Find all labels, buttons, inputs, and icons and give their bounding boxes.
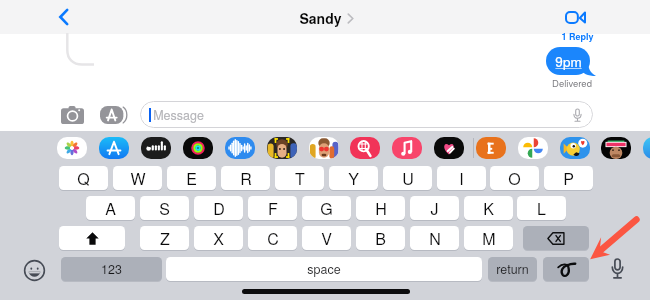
staticText: H	[375, 197, 387, 220]
button[interactable]: T	[275, 166, 324, 190]
staticText: T	[295, 167, 305, 190]
button[interactable]: Dictation	[605, 257, 629, 281]
staticText: space	[307, 260, 341, 278]
staticText: J	[430, 197, 439, 220]
button[interactable]: Camera	[57, 103, 87, 127]
button[interactable]: S	[140, 196, 189, 220]
button[interactable]: F	[248, 196, 297, 220]
staticText: E	[186, 167, 197, 190]
staticText: Z	[160, 227, 170, 250]
staticText: Q	[77, 167, 90, 190]
button[interactable]: return	[488, 257, 537, 281]
staticText: S	[159, 197, 170, 220]
button[interactable]: Contact details	[299, 8, 354, 28]
button[interactable]: App 2	[99, 137, 129, 159]
button[interactable]: 1 Reply	[555, 28, 600, 45]
button[interactable]: E	[167, 166, 216, 190]
button[interactable]: App 4	[183, 137, 213, 159]
staticText: P	[563, 167, 574, 190]
staticText: 123	[101, 260, 122, 278]
button[interactable]: J	[410, 196, 459, 220]
staticText: L	[537, 197, 546, 220]
button[interactable]: App 12	[518, 137, 548, 159]
button[interactable]: H	[356, 196, 405, 220]
staticText: D	[213, 197, 225, 220]
staticText: M	[482, 227, 496, 250]
button[interactable]: D	[194, 196, 243, 220]
staticText: N	[429, 227, 441, 250]
button[interactable]: App 9	[392, 137, 422, 159]
button[interactable]: Dictate	[568, 106, 586, 124]
button[interactable]: O	[490, 166, 539, 190]
button[interactable]: space	[166, 257, 482, 281]
staticText: Message	[153, 106, 204, 124]
button[interactable]: G	[302, 196, 351, 220]
button[interactable]: App 5	[225, 137, 255, 159]
button[interactable]: Message	[140, 101, 593, 128]
staticText: 1 Reply	[561, 30, 594, 43]
staticText: X	[213, 227, 224, 250]
staticText: F	[268, 197, 278, 220]
button[interactable]: I	[437, 166, 486, 190]
staticText: Delivered	[552, 76, 592, 90]
staticText: return	[496, 260, 529, 278]
staticText: U	[402, 167, 414, 190]
button[interactable]: X	[194, 226, 243, 250]
button[interactable]: K	[464, 196, 513, 220]
staticText: O	[508, 167, 521, 190]
button[interactable]: App 10	[434, 137, 464, 159]
button[interactable]: App 3	[141, 137, 171, 159]
staticText: W	[130, 167, 146, 190]
button[interactable]: App 13	[560, 137, 590, 159]
staticText: R	[240, 167, 252, 190]
button[interactable]: App 11	[476, 137, 506, 159]
button[interactable]: 9pm	[546, 47, 590, 75]
button[interactable]: A	[86, 196, 135, 220]
button[interactable]: C	[248, 226, 297, 250]
button[interactable]: R	[221, 166, 270, 190]
staticText: K	[483, 197, 494, 220]
button[interactable]: FaceTime video call	[557, 4, 593, 30]
button[interactable]: Backspace	[523, 226, 589, 250]
button[interactable]: M	[464, 226, 513, 250]
button[interactable]: Shift	[59, 226, 125, 250]
staticText: A	[105, 197, 116, 220]
button[interactable]: Z	[140, 226, 189, 250]
button[interactable]: App 6	[267, 137, 297, 159]
button[interactable]: App 14	[601, 137, 631, 159]
button[interactable]: Back	[49, 3, 79, 31]
staticText: Sandy	[299, 8, 342, 28]
staticText: B	[375, 227, 386, 250]
button[interactable]: N	[410, 226, 459, 250]
button[interactable]: App 8	[350, 137, 380, 159]
button[interactable]: 123	[61, 257, 162, 281]
button[interactable]: Q	[59, 166, 108, 190]
button[interactable]: Emoji	[22, 258, 46, 282]
button[interactable]: App 7	[309, 137, 339, 159]
staticText: C	[267, 227, 279, 250]
button[interactable]: Y	[329, 166, 378, 190]
button[interactable]: L	[517, 196, 566, 220]
button[interactable]: App 15	[643, 137, 650, 159]
button[interactable]: Apps	[97, 103, 129, 127]
button[interactable]: V	[302, 226, 351, 250]
staticText: V	[321, 227, 332, 250]
button[interactable]: App 1	[57, 137, 87, 159]
button[interactable]: P	[544, 166, 593, 190]
staticText: 9pm	[555, 52, 582, 71]
button[interactable]: W	[113, 166, 162, 190]
staticText: Y	[348, 167, 359, 190]
button[interactable]: B	[356, 226, 405, 250]
button[interactable]: Handwriting	[543, 257, 589, 281]
staticText: I	[459, 167, 464, 190]
button[interactable]: U	[383, 166, 432, 190]
staticText: G	[320, 197, 333, 220]
